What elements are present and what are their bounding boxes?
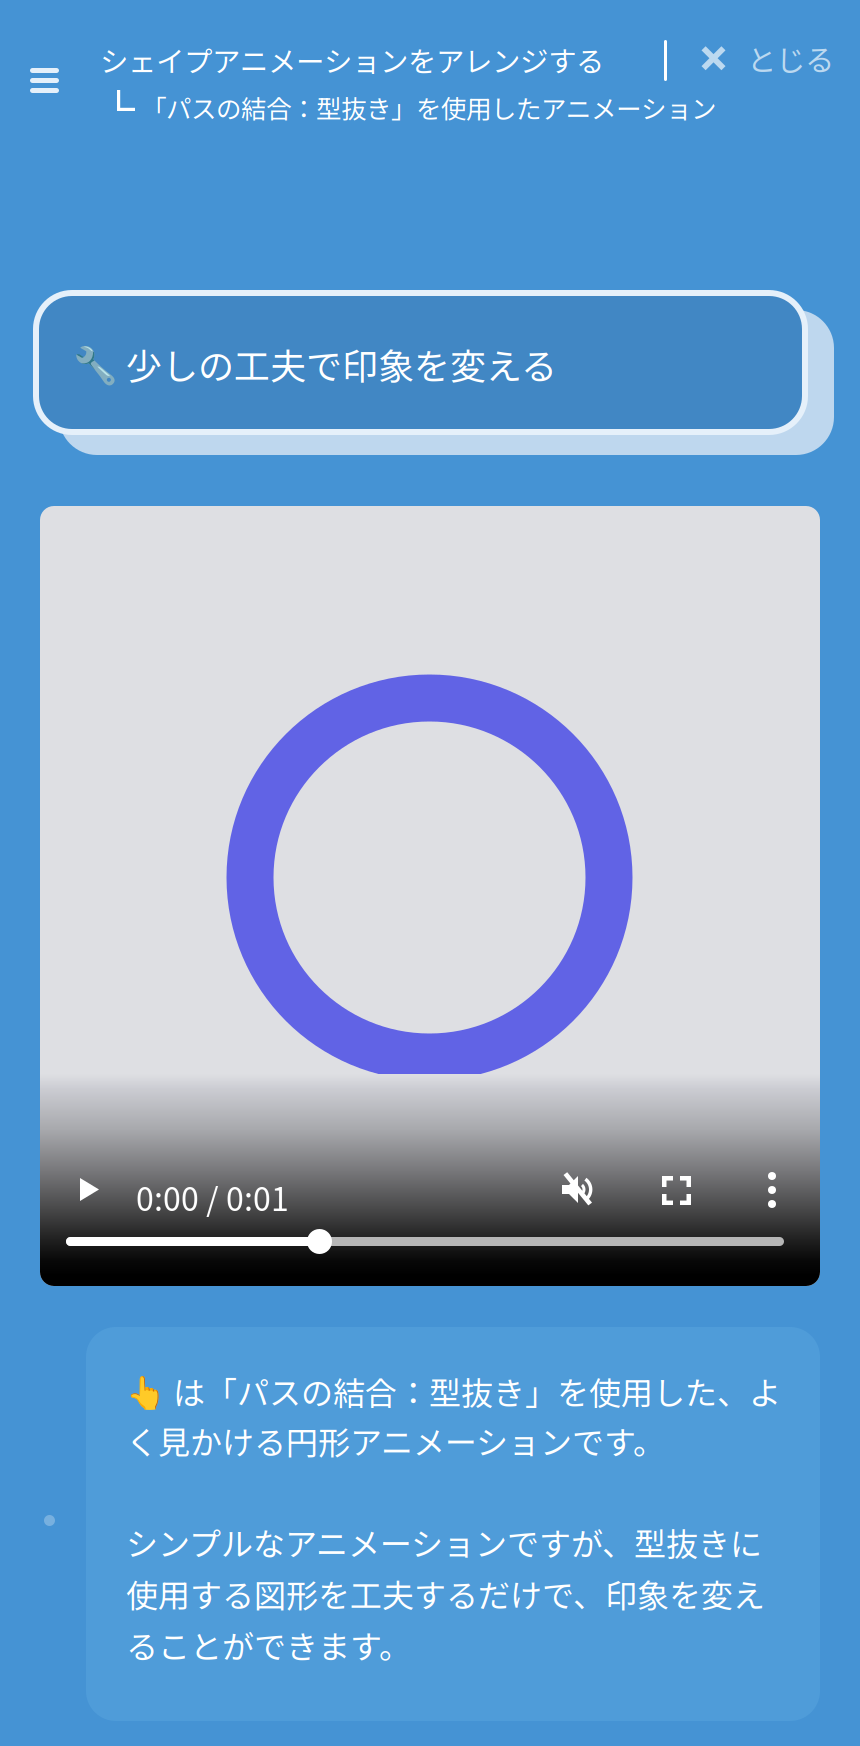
- button[interactable]: Unmute: [562, 1174, 593, 1205]
- button[interactable]: とじる: [691, 25, 843, 91]
- staticText: シェイプアニメーションをアレンジする: [100, 39, 604, 80]
- button[interactable]: More options: [767, 1173, 777, 1207]
- staticText: 0:00 / 0:01: [136, 1174, 289, 1220]
- staticText: 👆 は「パスの結合：型抜き」を使用した、よく見かける円形アニメーションです。: [126, 1368, 781, 1464]
- button[interactable]: Play: [80, 1178, 99, 1201]
- staticText: とじる: [747, 37, 834, 79]
- staticText: 🔧 少しの工夫で印象を変える: [73, 338, 557, 390]
- button[interactable]: Full screen: [662, 1176, 691, 1205]
- staticText: シンプルなアニメーションですが、型抜きに使用する図形を工夫するだけで、印象を変え…: [126, 1519, 765, 1668]
- staticText: 「パスの結合：型抜き」を使用したアニメーション: [141, 89, 716, 126]
- button[interactable]: Menu: [30, 68, 59, 93]
